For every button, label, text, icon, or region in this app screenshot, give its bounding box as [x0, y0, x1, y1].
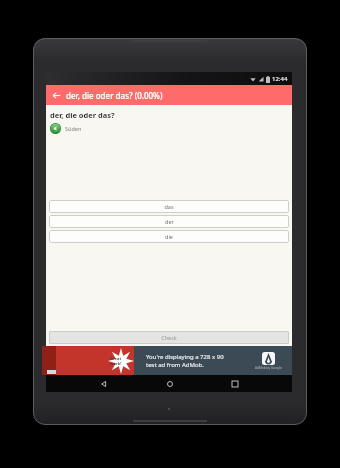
button[interactable]: Home	[161, 375, 178, 392]
staticText: Süden	[65, 125, 82, 132]
staticText: der	[165, 218, 174, 225]
button[interactable]: Back	[46, 85, 66, 105]
staticText: Check	[161, 334, 177, 341]
staticText: die	[165, 233, 173, 240]
other: Play audio	[50, 123, 61, 134]
button[interactable]: der	[49, 215, 289, 228]
staticText: 12:44	[272, 75, 288, 83]
button[interactable]: die	[49, 230, 289, 243]
button[interactable]: Back	[95, 375, 112, 392]
button[interactable]: das	[49, 200, 289, 213]
button[interactable]: Recent apps	[226, 375, 243, 392]
button[interactable]: Check	[49, 331, 289, 344]
staticText: You're displaying a 728 x 90 test ad fro…	[146, 353, 224, 369]
staticText: Great work!	[110, 356, 122, 366]
staticText: der, die oder das? (0.00%)	[66, 90, 163, 101]
staticText: AdMob by Google	[255, 366, 282, 370]
staticText: der, die oder das?	[50, 110, 115, 120]
staticText: das	[164, 203, 174, 210]
button[interactable]: Play audio	[50, 123, 82, 134]
button[interactable]: Great work!	[46, 346, 292, 375]
